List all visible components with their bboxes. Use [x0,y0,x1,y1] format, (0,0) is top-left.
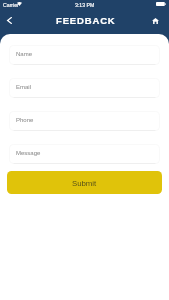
staticText: FEEDBACK [56,15,116,26]
staticText: Phone [16,117,34,124]
staticText: Email [16,84,32,91]
staticText: Carrier [3,2,19,8]
button[interactable]: Message [9,144,160,164]
button[interactable]: Name [9,45,160,65]
button[interactable]: Home [146,11,165,30]
staticText: Submit [72,179,97,188]
staticText: 3:13 PM [75,2,95,8]
button[interactable]: Submit [7,171,162,194]
staticText: Message [16,150,41,157]
button[interactable]: Back [1,11,18,30]
button[interactable]: Phone [9,111,160,131]
button[interactable]: Email [9,78,160,98]
staticText: Name [16,51,33,58]
